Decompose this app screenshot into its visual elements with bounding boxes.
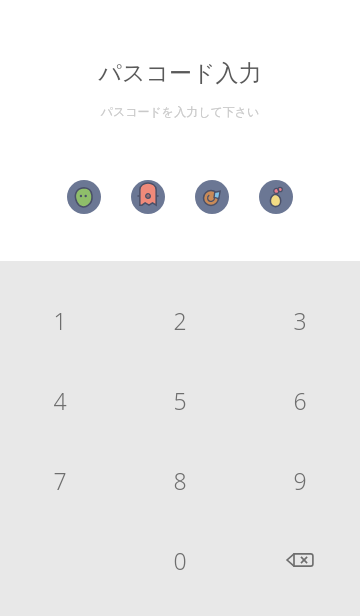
button[interactable]: 4 — [0, 360, 120, 440]
staticText: 2 — [173, 305, 187, 336]
staticText: 1 — [53, 305, 67, 336]
button[interactable]: 5 — [120, 360, 240, 440]
button[interactable]: Passcode slot 3 — [195, 180, 229, 214]
staticText: 8 — [173, 465, 187, 496]
button[interactable]: 1 — [0, 280, 120, 360]
button[interactable]: Passcode slot 2 — [131, 180, 165, 214]
staticText: 4 — [53, 385, 67, 416]
button[interactable]: 3 — [240, 280, 360, 360]
staticText: パスコードを入力して下さい — [0, 104, 360, 119]
staticText: 9 — [293, 465, 307, 496]
button[interactable]: Passcode slot 1 — [67, 180, 101, 214]
button[interactable]: 8 — [120, 440, 240, 520]
staticText: 5 — [173, 385, 187, 416]
staticText: 7 — [53, 465, 67, 496]
button[interactable]: 9 — [240, 440, 360, 520]
button[interactable]: 0 — [120, 520, 240, 600]
staticText: パスコード入力 — [0, 59, 360, 88]
button[interactable]: 7 — [0, 440, 120, 520]
button[interactable]: Passcode slot 4 — [259, 180, 293, 214]
staticText: 0 — [173, 545, 187, 576]
button[interactable]: 6 — [240, 360, 360, 440]
button[interactable]: Backspace — [240, 520, 360, 600]
staticText: 6 — [293, 385, 307, 416]
button[interactable]: 2 — [120, 280, 240, 360]
staticText: 3 — [293, 305, 307, 336]
